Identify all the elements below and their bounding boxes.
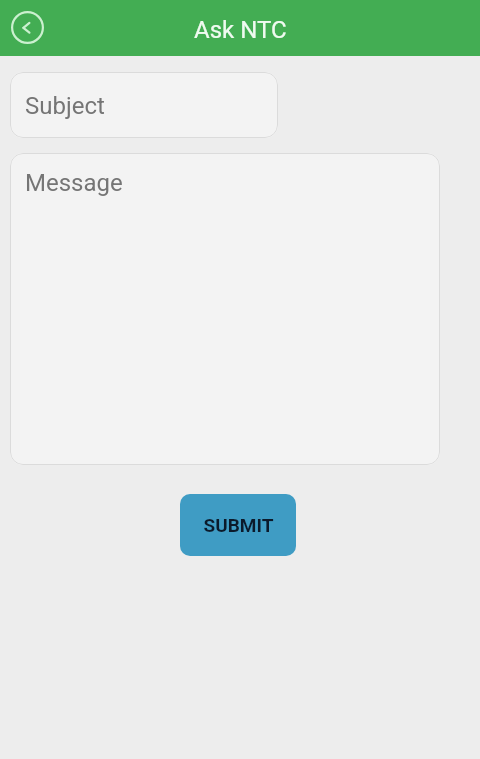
button[interactable]: Back xyxy=(9,9,46,46)
button[interactable]: Message xyxy=(10,153,440,465)
button[interactable]: Subject xyxy=(10,72,278,138)
staticText: Subject xyxy=(25,92,105,120)
staticText: SUBMIT xyxy=(203,514,274,536)
button[interactable]: SUBMIT xyxy=(180,494,296,556)
staticText: Message xyxy=(25,169,123,197)
staticText: Ask NTC xyxy=(194,16,287,44)
